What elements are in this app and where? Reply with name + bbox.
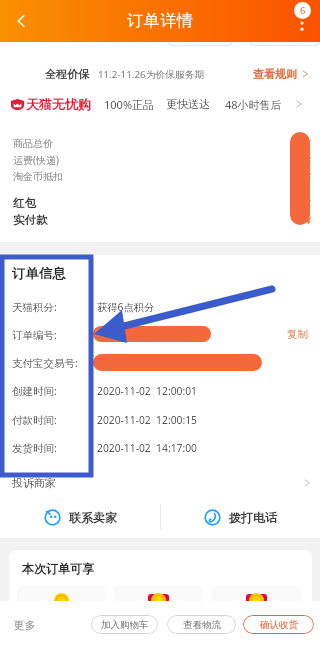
staticText: 复制: [287, 328, 308, 341]
staticText: 拨打电话: [229, 510, 277, 525]
button[interactable]: 全程价保: [0, 60, 320, 88]
staticText: 订单编号:: [12, 328, 57, 342]
staticText: 天猫积分:: [12, 300, 57, 314]
button[interactable]: 天猫无忧购: [0, 91, 320, 117]
button[interactable]: 拨打电话: [160, 498, 320, 536]
button[interactable]: 联系卖家: [0, 498, 160, 536]
staticText: 2020-11-02 14:17:00: [97, 441, 197, 455]
staticText: 实付款: [13, 213, 48, 227]
button[interactable]: [17, 586, 105, 601]
button[interactable]: More options: [291, 2, 313, 36]
staticText: 查看规则: [253, 67, 297, 81]
staticText: 6: [300, 4, 306, 17]
staticText: ¥: [306, 214, 312, 226]
staticText: 确认收货: [260, 619, 298, 631]
staticText: 11.2-11.26为价保服务期: [98, 68, 205, 81]
staticText: ¥: [306, 154, 312, 166]
button[interactable]: 更多: [4, 611, 44, 639]
staticText: 本次订单可享: [22, 561, 94, 576]
button[interactable]: 加入购物车: [91, 615, 158, 634]
staticText: 48小时售后: [225, 97, 282, 112]
staticText: 订单信息: [12, 265, 66, 282]
button[interactable]: [212, 586, 301, 601]
staticText: 支付宝交易号:: [12, 356, 78, 370]
staticText: 天猫无忧购: [26, 96, 91, 112]
staticText: 淘金币抵扣: [13, 170, 63, 183]
staticText: 查看物流: [183, 619, 221, 631]
button[interactable]: Back: [0, 0, 42, 42]
staticText: 付款时间:: [12, 413, 57, 427]
staticText: 100%正品: [104, 97, 155, 112]
button[interactable]: 确认收货: [243, 615, 314, 634]
staticText: 更快送达: [166, 97, 210, 111]
button[interactable]: [114, 586, 203, 601]
staticText: 加入购物车: [101, 619, 149, 631]
staticText: 联系卖家: [69, 510, 117, 525]
staticText: 全程价保: [45, 67, 89, 81]
staticText: 商品总价: [13, 137, 53, 150]
staticText: 发货时间:: [12, 441, 57, 455]
staticText: 投诉商家: [12, 476, 56, 490]
staticText: 获得6点积分: [97, 300, 155, 314]
staticText: 创建时间:: [12, 384, 57, 398]
staticText: 2020-11-02 12:00:01: [97, 384, 197, 398]
staticText: ¥: [306, 137, 312, 149]
button[interactable]: 投诉商家: [0, 472, 320, 494]
staticText: 订单详情: [127, 11, 194, 31]
staticText: 2020-11-02 12:00:15: [97, 413, 197, 427]
staticText: 运费(快递): [13, 153, 59, 167]
staticText: 更多: [13, 619, 36, 632]
staticText: 红包: [13, 196, 36, 210]
staticText: ¥: [306, 197, 312, 209]
staticText: ¥: [306, 170, 312, 182]
button[interactable]: 查看物流: [167, 615, 236, 634]
